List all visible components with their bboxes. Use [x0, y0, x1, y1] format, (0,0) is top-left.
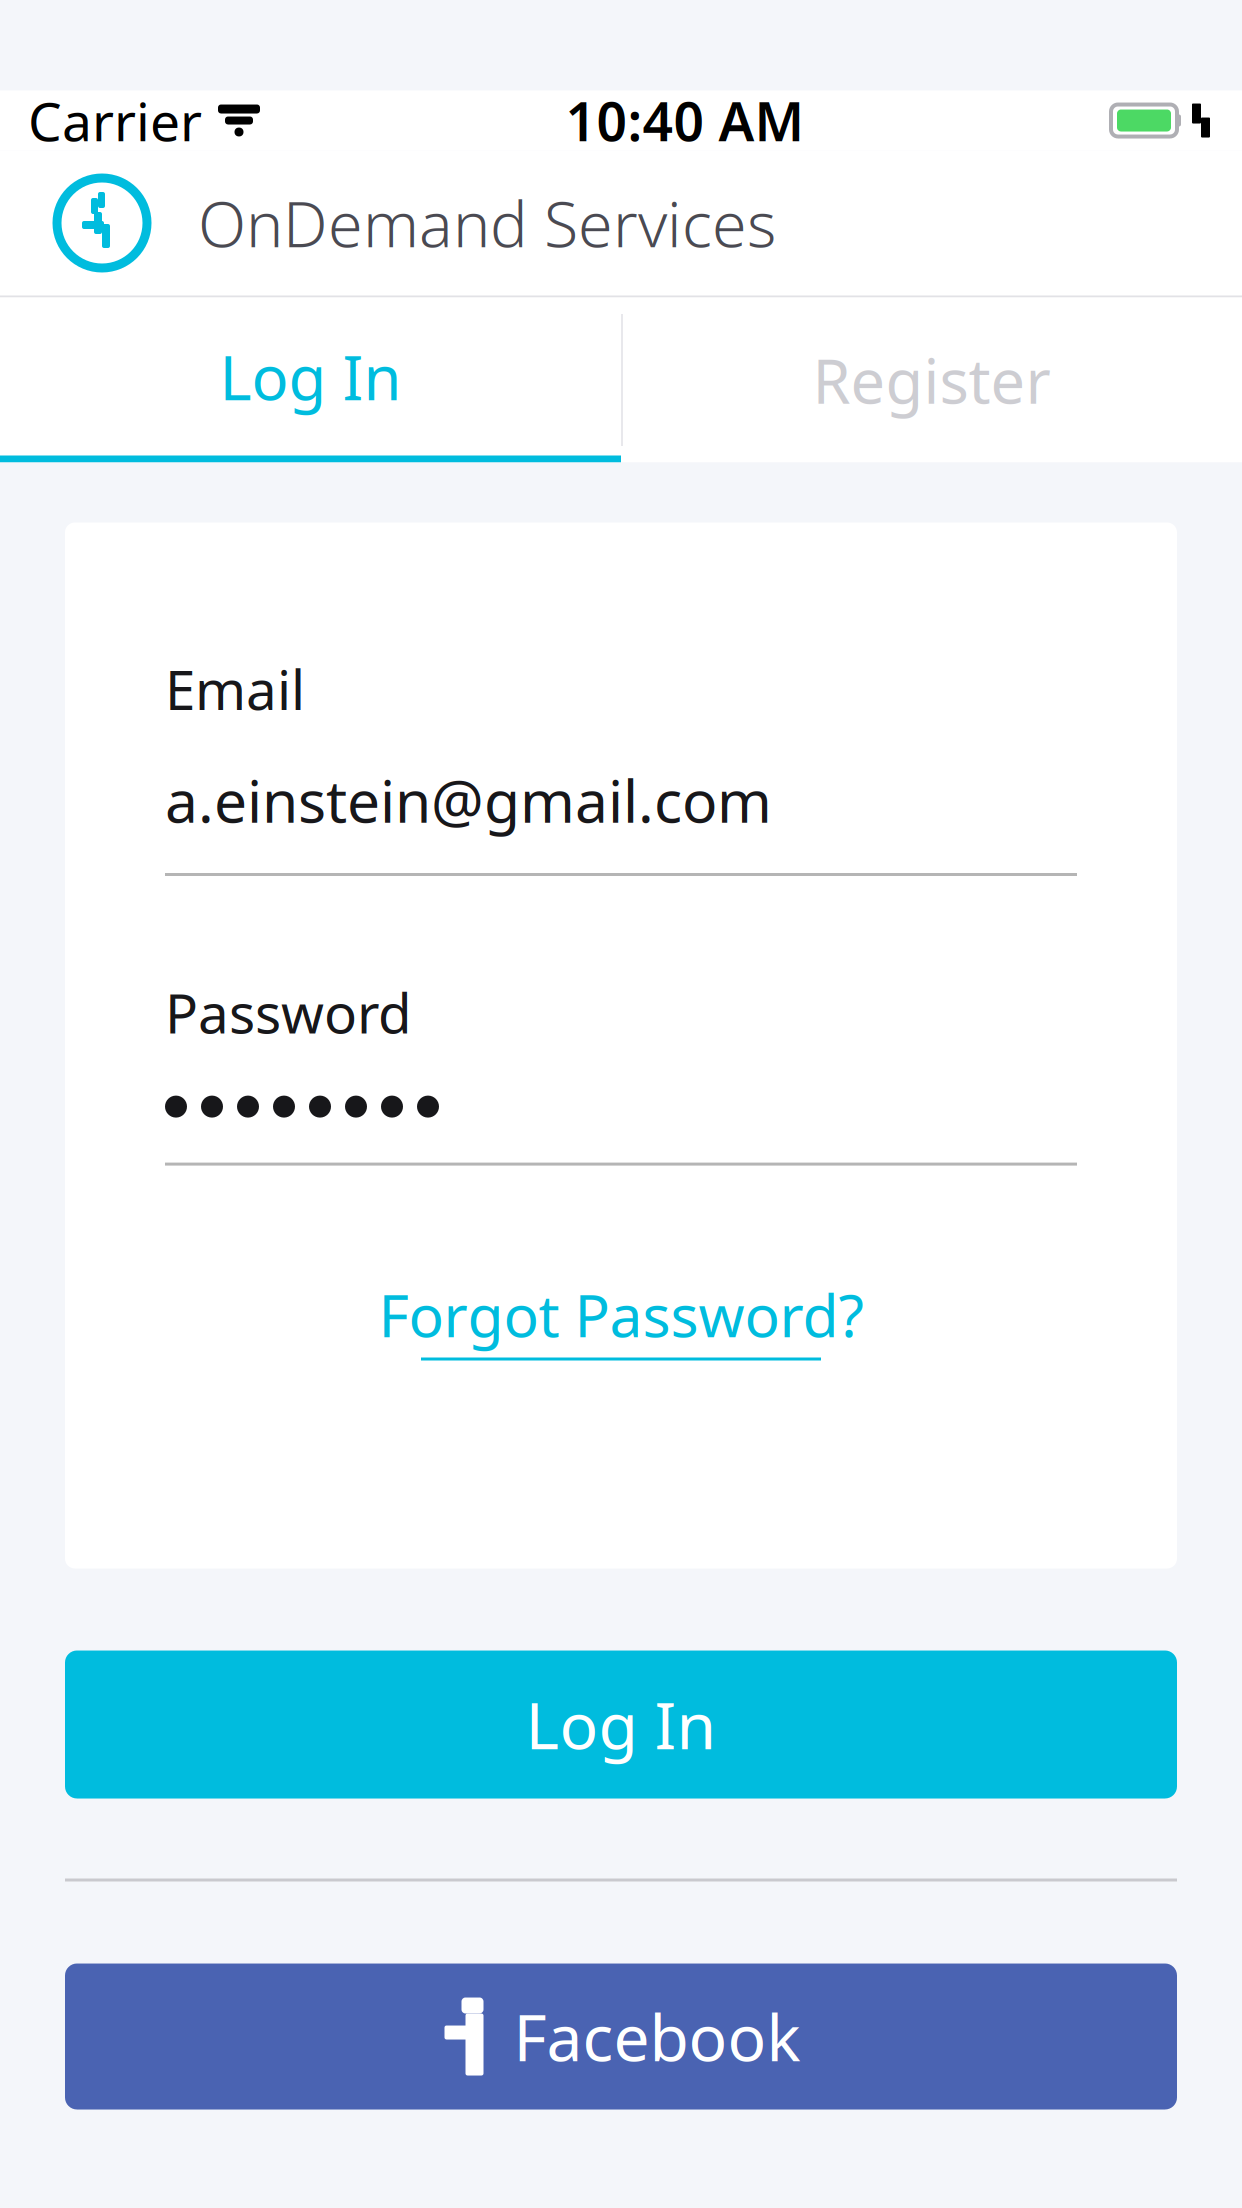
- button[interactable]: Forgot Password?: [165, 1276, 1077, 1360]
- staticText: 10:40 AM: [565, 85, 804, 156]
- button[interactable]: Log In: [0, 297, 621, 462]
- staticText: Log In: [219, 336, 401, 417]
- staticText: Facebook: [513, 1994, 800, 2079]
- staticText: a.einstein@gmail.com: [165, 761, 772, 839]
- staticText: Log In: [525, 1682, 716, 1767]
- button[interactable]: Register: [621, 297, 1242, 462]
- button[interactable]: Log In: [65, 1650, 1177, 1798]
- staticText: Register: [812, 339, 1050, 421]
- staticText: Email: [165, 652, 305, 725]
- staticText: Forgot Password?: [378, 1276, 863, 1353]
- button[interactable]: Facebook: [65, 1963, 1177, 2109]
- staticText: Password: [165, 976, 412, 1049]
- staticText: Carrier: [28, 85, 202, 156]
- staticText: OnDemand Services: [198, 181, 776, 265]
